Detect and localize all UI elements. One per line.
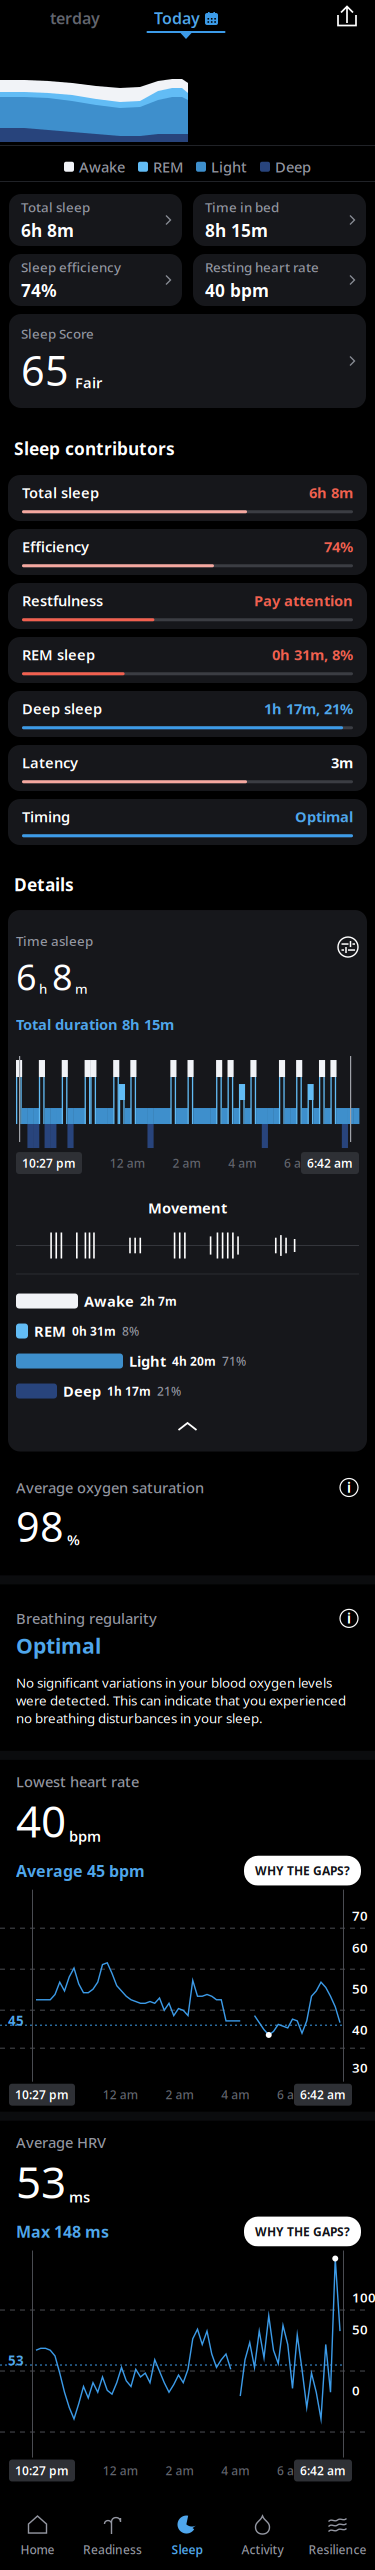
- staticText: 10:27 pm: [22, 1155, 76, 1171]
- staticText: 4h 20m: [172, 1353, 216, 1369]
- staticText: 6:42 am: [300, 2463, 346, 2478]
- staticText: 6h 8m: [21, 219, 74, 242]
- button[interactable]: Time in bed: [193, 194, 366, 246]
- staticText: 6h 8m: [309, 483, 353, 502]
- staticText: Awake: [79, 157, 125, 176]
- staticText: Details: [14, 873, 74, 896]
- staticText: Time in bed: [205, 198, 279, 216]
- staticText: 1h 17m: [107, 1383, 151, 1399]
- button[interactable]: WHY THE GAPS?: [244, 1856, 361, 1886]
- button[interactable]: Home: [0, 2511, 75, 2559]
- button[interactable]: Sleep Score: [9, 314, 366, 408]
- staticText: Light: [211, 157, 247, 176]
- staticText: 2 am: [165, 2463, 193, 2478]
- staticText: Home: [20, 2541, 54, 2557]
- button[interactable]: REM sleep: [8, 637, 367, 683]
- staticText: No significant variations in your blood …: [16, 1674, 346, 1727]
- staticText: 60: [352, 1939, 368, 1956]
- staticText: Breathing regularity: [16, 1609, 157, 1628]
- staticText: 53: [8, 2351, 24, 2369]
- staticText: Max 148 ms: [16, 2221, 109, 2242]
- button[interactable]: Info: [339, 1608, 359, 1628]
- button[interactable]: Info: [339, 1477, 359, 1497]
- staticText: 4 am: [221, 2463, 249, 2478]
- staticText: 10:27 pm: [15, 2463, 69, 2478]
- staticText: 12 am: [103, 2463, 138, 2478]
- button[interactable]: Restfulness: [8, 583, 367, 629]
- staticText: Total sleep: [21, 198, 90, 216]
- staticText: 4 am: [221, 2087, 249, 2103]
- staticText: Timing: [22, 807, 70, 826]
- staticText: 2h 7m: [140, 1293, 177, 1309]
- staticText: 0h 31m, 8%: [272, 645, 353, 664]
- button[interactable]: Deep sleep: [8, 691, 367, 737]
- staticText: Resting heart rate: [205, 258, 319, 276]
- staticText: 8h 15m: [205, 219, 268, 242]
- staticText: 2 am: [172, 1155, 200, 1171]
- staticText: Average HRV: [16, 2133, 106, 2152]
- staticText: Fair: [75, 373, 102, 392]
- staticText: Time asleep: [16, 932, 93, 950]
- staticText: Sleep contributors: [14, 437, 175, 460]
- staticText: 98: [16, 1498, 64, 1553]
- staticText: 74%: [21, 279, 57, 302]
- staticText: 40: [16, 1791, 66, 1850]
- staticText: Readiness: [83, 2541, 142, 2557]
- staticText: 0: [352, 2381, 360, 2399]
- button[interactable]: Activity: [225, 2511, 300, 2559]
- staticText: Deep: [63, 1381, 101, 1401]
- staticText: 53: [16, 2152, 66, 2211]
- staticText: 6: [16, 953, 37, 1000]
- staticText: i: [347, 1609, 351, 1627]
- staticText: terday: [50, 7, 100, 29]
- staticText: REM: [153, 157, 183, 176]
- staticText: bpm: [69, 1826, 101, 1846]
- button[interactable]: Timing: [8, 799, 367, 845]
- staticText: 8%: [122, 1323, 139, 1339]
- staticText: 70: [352, 1907, 368, 1924]
- staticText: 1h 17m, 21%: [264, 699, 353, 718]
- staticText: Sleep Score: [21, 325, 94, 342]
- button[interactable]: Readiness: [75, 2511, 150, 2559]
- button[interactable]: Resilience: [300, 2511, 375, 2559]
- button[interactable]: Collapse: [16, 1401, 359, 1451]
- button[interactable]: Chart options: [337, 932, 359, 958]
- button[interactable]: Efficiency: [8, 529, 367, 575]
- staticText: Sleep: [171, 2541, 203, 2557]
- button[interactable]: Total sleep: [8, 475, 367, 521]
- staticText: REM: [34, 1321, 66, 1341]
- staticText: Light: [129, 1351, 166, 1371]
- button[interactable]: Share: [335, 5, 359, 27]
- staticText: Movement: [148, 1198, 227, 1217]
- staticText: Deep: [275, 157, 311, 176]
- staticText: 4 am: [228, 1155, 256, 1171]
- staticText: 8: [52, 953, 73, 1000]
- staticText: Pay attention: [254, 591, 353, 610]
- staticText: Today: [154, 7, 200, 29]
- staticText: WHY THE GAPS?: [255, 1863, 350, 1879]
- staticText: 12 am: [110, 1155, 145, 1171]
- button[interactable]: Total sleep: [9, 194, 182, 246]
- staticText: 50: [352, 2320, 368, 2338]
- staticText: 50: [352, 1980, 368, 1997]
- button[interactable]: Sleep efficiency: [9, 254, 182, 306]
- staticText: 40: [352, 2021, 368, 2038]
- staticText: 74%: [324, 537, 353, 556]
- staticText: 3m: [331, 753, 353, 772]
- button[interactable]: Sleep: [150, 2511, 225, 2559]
- button[interactable]: Latency: [8, 745, 367, 791]
- staticText: Latency: [22, 753, 78, 772]
- staticText: 6:42 am: [300, 2087, 346, 2103]
- staticText: WHY THE GAPS?: [255, 2224, 350, 2239]
- staticText: 71%: [222, 1353, 246, 1369]
- button[interactable]: Today: [146, 7, 226, 39]
- staticText: REM sleep: [22, 645, 95, 664]
- button[interactable]: terday: [14, 7, 100, 29]
- button[interactable]: WHY THE GAPS?: [244, 2217, 361, 2246]
- staticText: Efficiency: [22, 537, 89, 556]
- staticText: 6 a: [277, 2463, 294, 2478]
- staticText: Resilience: [308, 2541, 366, 2557]
- button[interactable]: Resting heart rate: [193, 254, 366, 306]
- staticText: 100: [352, 2288, 375, 2306]
- staticText: Deep sleep: [22, 699, 102, 718]
